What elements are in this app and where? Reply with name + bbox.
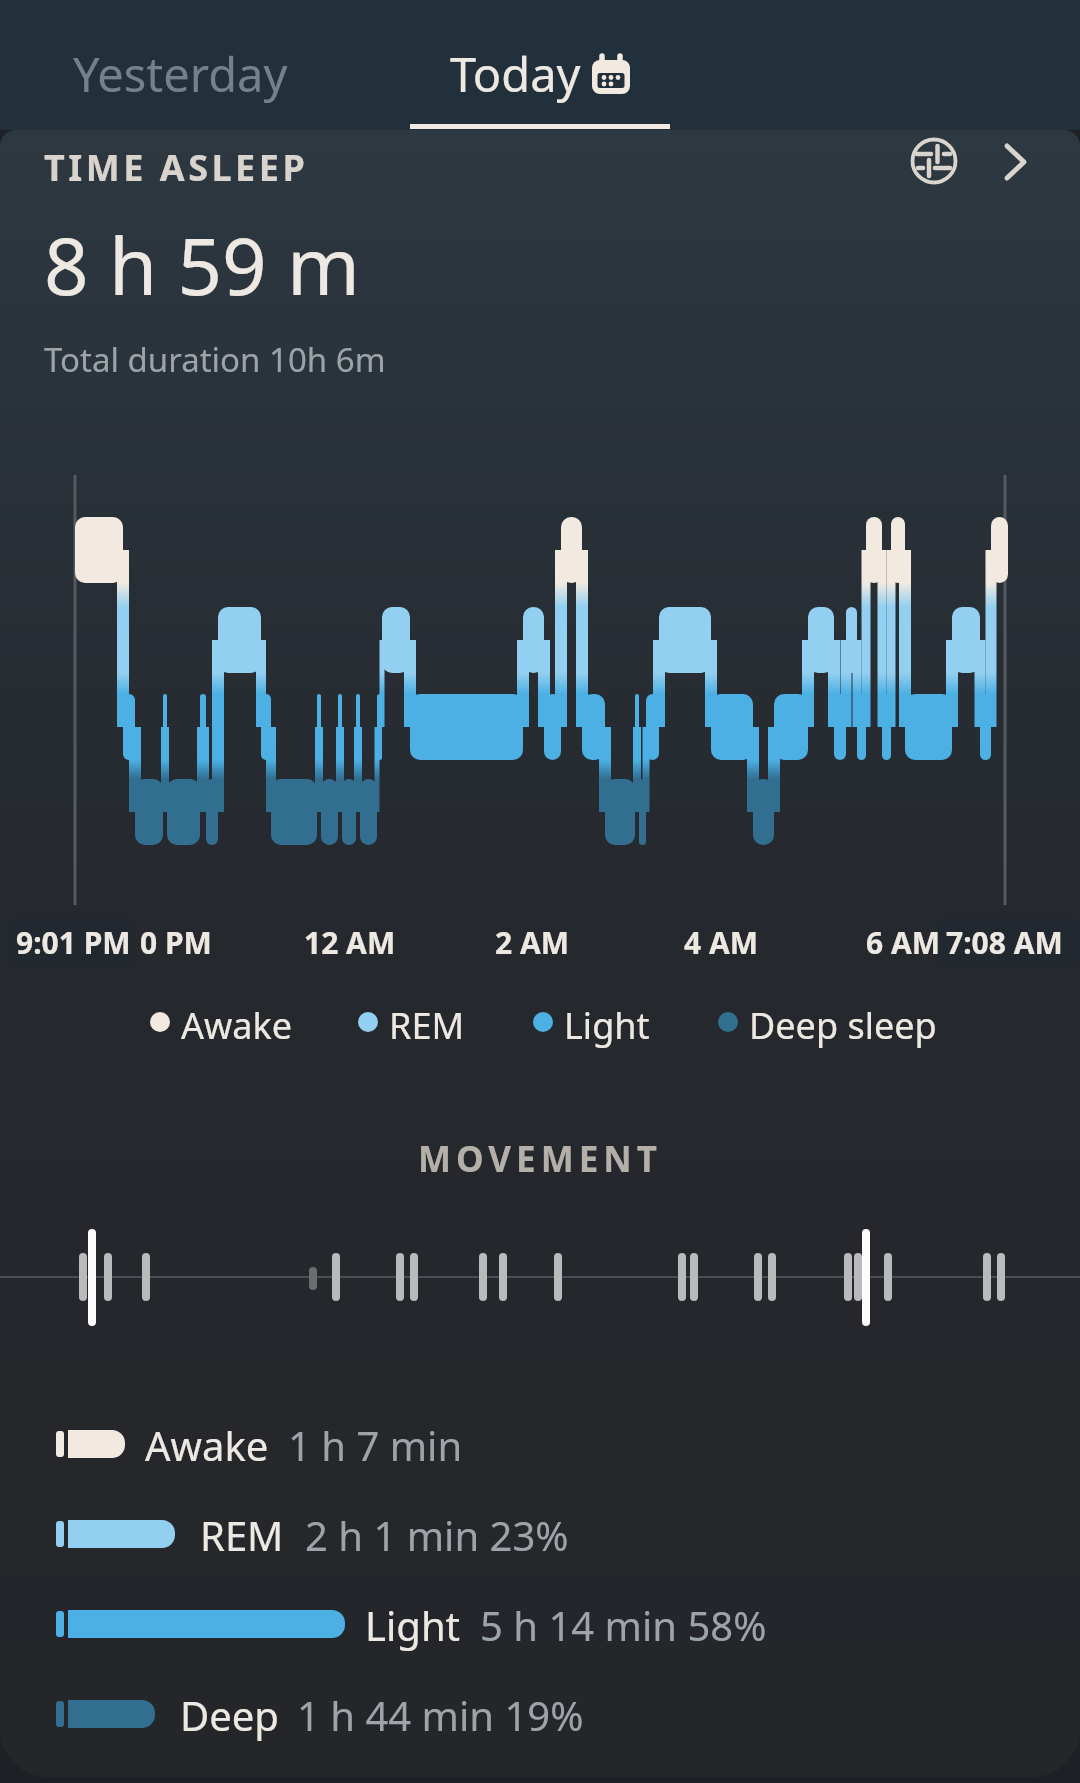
staticText: Awake <box>181 1001 293 1050</box>
staticText: 12 AM <box>304 922 396 963</box>
staticText: 9:01 PM <box>16 922 131 963</box>
staticText: Awake <box>145 1418 269 1472</box>
staticText: 0 PM <box>140 922 212 963</box>
staticText: REM <box>200 1508 284 1562</box>
staticText: 6 AM <box>866 922 941 963</box>
staticText: Yesterday <box>73 42 288 106</box>
staticText: Total duration 10h 6m <box>44 337 386 382</box>
staticText: 4 AM <box>684 922 759 963</box>
staticText: 7:08 AM <box>946 922 1063 963</box>
staticText: REM <box>389 1001 465 1050</box>
staticText: 1 h 44 min 19% <box>297 1688 584 1742</box>
staticText: 2 AM <box>495 922 570 963</box>
staticText: Deep sleep <box>749 1001 937 1050</box>
staticText: MOVEMENT <box>418 1135 662 1183</box>
staticText: TIME ASLEEP <box>44 143 309 192</box>
button[interactable]: Yesterday <box>0 10 360 138</box>
staticText: 2 h 1 min 23% <box>305 1508 569 1562</box>
button[interactable] <box>984 132 1038 192</box>
staticText: 5 h 14 min 58% <box>480 1598 767 1652</box>
staticText: 1 h 7 min <box>288 1418 463 1472</box>
button[interactable] <box>904 132 964 192</box>
staticText: 8 h 59 m <box>44 212 360 318</box>
staticText: Light <box>564 1001 650 1050</box>
staticText: Light <box>365 1598 461 1652</box>
staticText: Today <box>450 42 581 106</box>
staticText: Deep <box>180 1688 279 1742</box>
button[interactable]: Today <box>360 10 720 138</box>
